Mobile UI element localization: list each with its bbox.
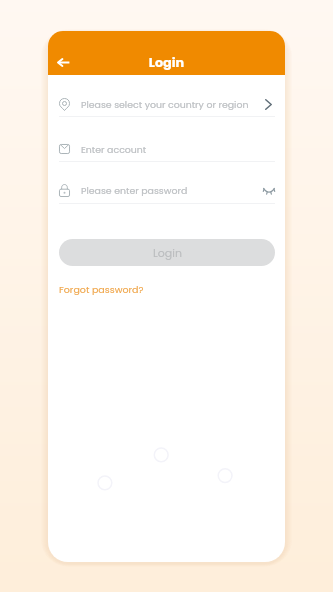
staticText: Please select your country or region <box>81 98 249 111</box>
staticText: Enter account <box>81 143 147 156</box>
button[interactable]: Please enter password <box>59 173 275 207</box>
button[interactable]: Login <box>59 239 275 266</box>
button[interactable]: Forgot password? <box>58 282 145 297</box>
staticText: Please enter password <box>81 184 188 197</box>
button[interactable]: Back <box>51 50 76 75</box>
button[interactable]: Please select your country or region <box>59 87 275 121</box>
button[interactable]: Enter account <box>59 132 275 166</box>
staticText: Forgot password? <box>59 283 144 296</box>
staticText: Login <box>48 54 285 72</box>
staticText: Login <box>153 245 182 260</box>
